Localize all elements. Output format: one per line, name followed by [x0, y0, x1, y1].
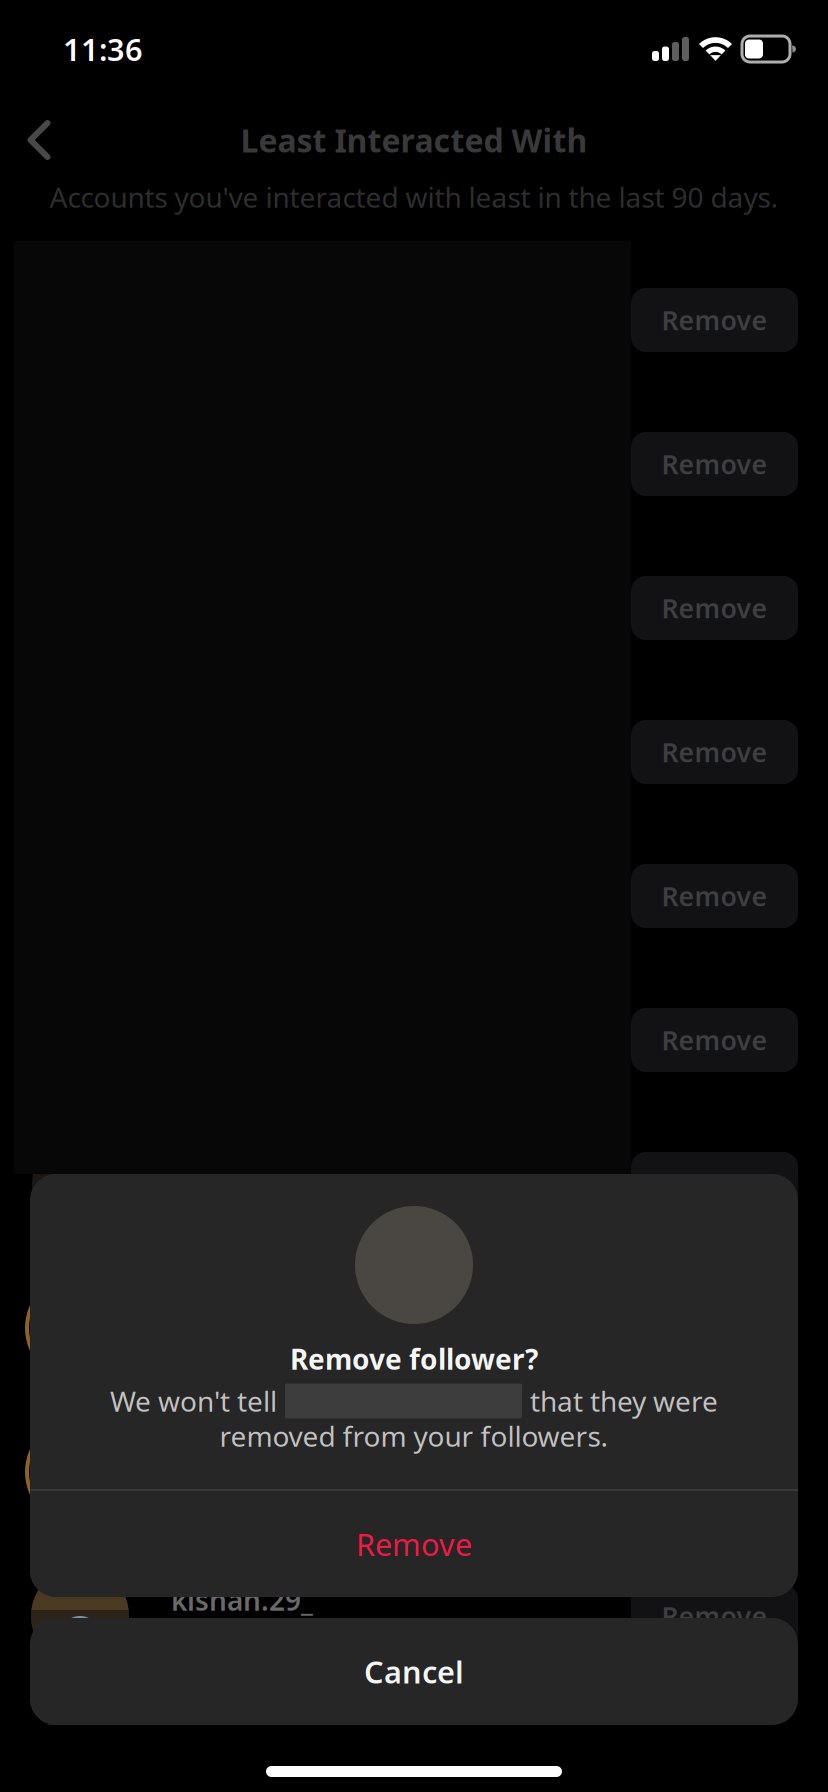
button[interactable]: Remove	[631, 288, 798, 352]
button[interactable]: Cancel	[30, 1618, 798, 1725]
staticText: removed from your followers.	[219, 1417, 608, 1455]
button[interactable]: Remove	[631, 720, 798, 784]
staticText: Remove	[661, 878, 767, 914]
button[interactable]	[0, 1112, 828, 1256]
button[interactable]: Remove	[631, 1440, 798, 1504]
button[interactable]: Remove	[631, 1008, 798, 1072]
button[interactable]: Remove	[631, 1584, 798, 1648]
staticText: Remove	[356, 1524, 472, 1564]
staticText: Remove	[661, 302, 767, 338]
staticText: Remove	[661, 1166, 767, 1202]
button[interactable]: Remove	[631, 432, 798, 496]
button[interactable]: kishan.29_	[0, 1544, 828, 1688]
button[interactable]	[0, 1688, 828, 1792]
staticText: 11:36	[63, 29, 143, 69]
staticText: Cancel	[364, 1651, 464, 1692]
button[interactable]	[0, 536, 828, 680]
button[interactable]	[0, 392, 828, 536]
button[interactable]	[0, 968, 828, 1112]
staticText: Remove	[661, 734, 767, 770]
button[interactable]: Remove	[30, 1491, 798, 1597]
staticText: Remove	[661, 446, 767, 482]
staticText: kishan.29_	[163, 1597, 305, 1635]
button[interactable]	[0, 824, 828, 968]
staticText: Accounts you've interacted with least in…	[49, 178, 778, 216]
button[interactable]	[0, 1400, 828, 1544]
staticText: Remove follower?	[290, 1340, 538, 1378]
staticText: Remove	[661, 590, 767, 626]
button[interactable]	[0, 680, 828, 824]
staticText: We won't tell	[110, 1382, 277, 1420]
staticText: Remove	[661, 1022, 767, 1058]
button[interactable]: Back	[0, 101, 78, 179]
button[interactable]: Remove	[631, 576, 798, 640]
button[interactable]	[0, 248, 828, 392]
staticText: kishan.29_	[171, 1581, 313, 1619]
staticText: Remove	[661, 1598, 767, 1634]
staticText: Least Interacted With	[240, 119, 587, 161]
button[interactable]	[0, 1256, 828, 1400]
button[interactable]: Remove	[631, 1152, 798, 1216]
staticText: that they were	[530, 1382, 718, 1420]
staticText: Remove	[661, 1454, 767, 1490]
button[interactable]: Remove	[631, 864, 798, 928]
